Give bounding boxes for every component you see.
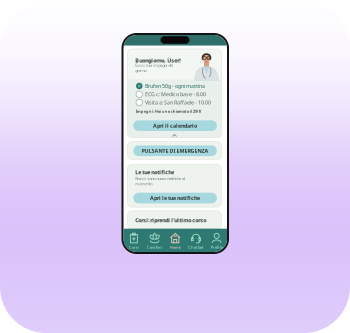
button[interactable]: ECG c: Medico base - 8.00	[136, 90, 220, 98]
staticText: Buongiorno, User!	[135, 57, 181, 62]
staticText: Corsi	[129, 244, 139, 250]
staticText: Ecco i tuoi impegni del giorno	[135, 62, 173, 73]
button[interactable]: Apri il calendario	[133, 120, 217, 131]
staticText: Visita a: San Raffaele - 10.00	[145, 99, 211, 106]
staticText: ECG c: Medico base - 8.00	[145, 91, 206, 98]
staticText: Apri le tue notifiche	[150, 194, 200, 202]
staticText: Brufen 50g - ogni mattina	[145, 82, 205, 90]
button[interactable]: Visita a: San Raffaele - 10.00	[136, 98, 220, 106]
staticText: Profilo	[211, 244, 223, 250]
staticText: Le tue notifiche	[135, 169, 174, 174]
staticText: Home	[170, 245, 181, 250]
staticText: Chatbot	[188, 244, 204, 250]
button[interactable]: Apri le tue notifiche	[133, 193, 217, 203]
button[interactable]: Corsi: riprendi l'ultimo corso	[127, 211, 221, 229]
staticText: Corsi: riprendi l'ultimo corso	[135, 217, 206, 222]
staticText: Non ci sono nuove notifiche al momento	[135, 176, 185, 186]
button[interactable]: PULSANTE DI EMERGENZA	[133, 145, 217, 156]
staticText: PULSANTE DI EMERGENZA	[142, 147, 209, 154]
staticText: Comfort	[146, 245, 162, 250]
staticText: Apri il calendario	[153, 122, 197, 129]
button[interactable]: Comfort	[144, 233, 165, 249]
button[interactable]: Chatbot	[186, 233, 206, 249]
button[interactable]: Corsi	[123, 233, 144, 249]
staticText: Impegni: Hai una chiamata il 29/8	[136, 109, 201, 114]
button[interactable]: Brufen 50g - ogni mattina	[136, 82, 220, 90]
button[interactable]: Profilo	[206, 233, 227, 249]
button[interactable]: Home	[165, 233, 186, 249]
